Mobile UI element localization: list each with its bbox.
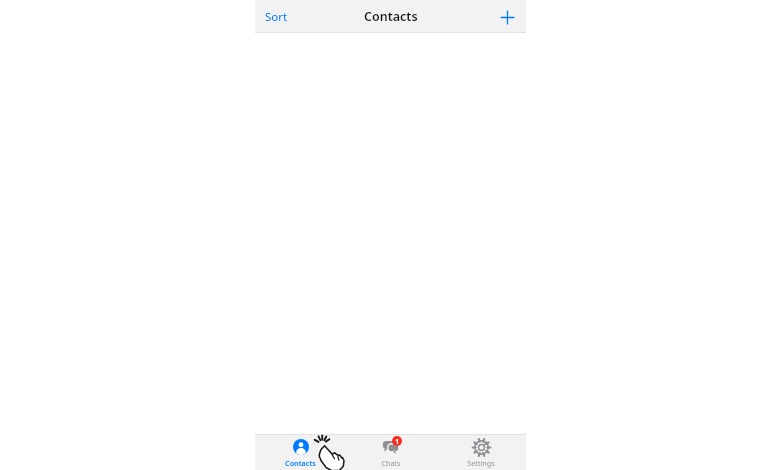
button[interactable]: Contacts — [255, 434, 346, 470]
staticText: 1 — [395, 437, 399, 446]
button[interactable]: Add contact — [494, 4, 520, 30]
button[interactable]: 1 — [346, 434, 436, 470]
staticText: Chats — [381, 458, 401, 468]
staticText: Contacts — [285, 458, 316, 468]
button[interactable]: Settings — [436, 434, 526, 470]
staticText: Settings — [467, 458, 495, 468]
staticText: Contacts — [364, 8, 418, 25]
staticText: Sort — [265, 9, 288, 25]
button[interactable]: Sort — [259, 5, 294, 29]
